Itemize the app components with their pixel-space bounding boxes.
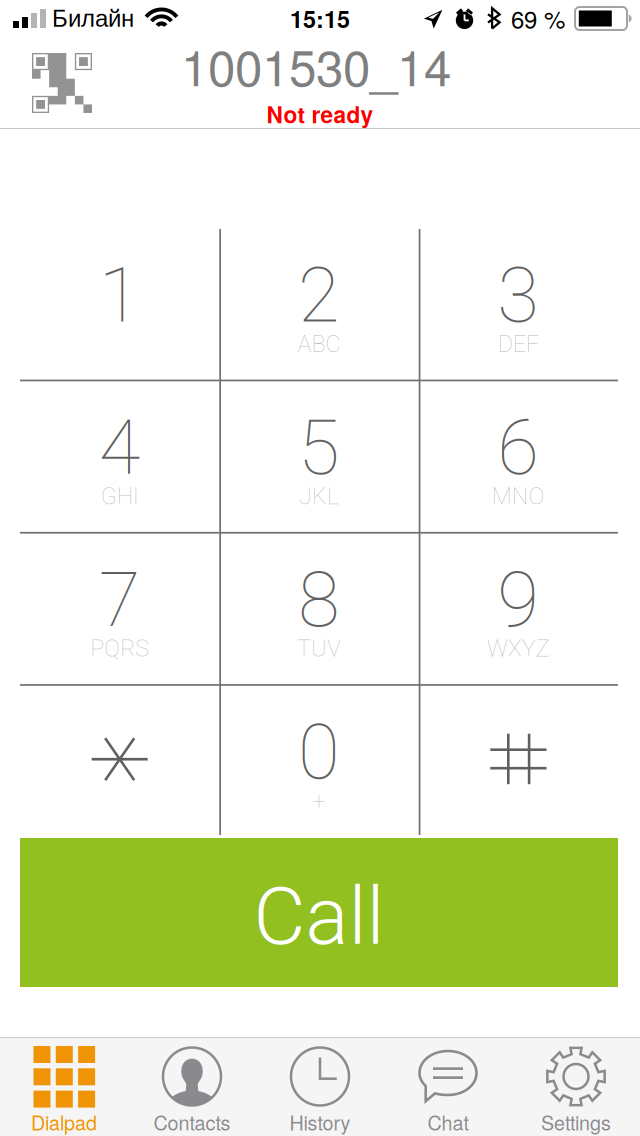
staticText: 2	[298, 251, 340, 340]
staticText: 3	[497, 251, 539, 340]
button[interactable]	[219, 228, 419, 380]
staticText: Settings	[541, 1108, 611, 1136]
button[interactable]	[219, 684, 419, 836]
staticText: 5	[298, 403, 340, 492]
staticText: 0	[298, 708, 340, 797]
staticText: ABC	[297, 330, 340, 358]
staticText: 69 %	[511, 1, 565, 36]
staticText: GHI	[101, 483, 139, 510]
staticText: TUV	[297, 635, 341, 662]
staticText: +	[312, 787, 325, 814]
staticText: Билайн	[52, 5, 134, 32]
button[interactable]	[219, 380, 419, 532]
button[interactable]: Settings	[512, 1038, 640, 1136]
button[interactable]	[419, 532, 618, 684]
staticText: 1001530_14	[181, 30, 451, 100]
button[interactable]	[419, 228, 618, 380]
button[interactable]	[20, 228, 219, 380]
button[interactable]	[419, 684, 618, 836]
staticText: Dialpad	[31, 1108, 97, 1136]
button[interactable]: History	[256, 1038, 384, 1136]
staticText: 4	[99, 403, 141, 492]
staticText: 8	[298, 555, 340, 645]
staticText: Contacts	[153, 1108, 230, 1136]
staticText: MNO	[492, 483, 545, 510]
button[interactable]	[20, 684, 219, 836]
button[interactable]: Chat	[384, 1038, 512, 1136]
staticText: 9	[497, 555, 539, 645]
staticText: 7	[99, 555, 141, 645]
staticText: WXYZ	[487, 635, 550, 662]
staticText: Call	[253, 870, 384, 963]
staticText: Not ready	[266, 98, 373, 130]
staticText: 6	[497, 403, 539, 492]
staticText: JKL	[299, 483, 339, 510]
button[interactable]	[219, 532, 419, 684]
staticText: DEF	[498, 330, 539, 358]
button[interactable]: Dialpad	[0, 1038, 128, 1136]
staticText: 15:15	[290, 2, 350, 35]
staticText: 1	[99, 251, 141, 340]
button[interactable]: Scan QR code	[24, 45, 100, 121]
button[interactable]	[20, 532, 219, 684]
staticText: History	[289, 1108, 350, 1136]
staticText: Chat	[427, 1108, 468, 1136]
staticText: PQRS	[90, 635, 149, 662]
button[interactable]	[419, 380, 618, 532]
button[interactable]: Call	[20, 838, 618, 987]
button[interactable]	[20, 380, 219, 532]
button[interactable]: Contacts	[128, 1038, 256, 1136]
